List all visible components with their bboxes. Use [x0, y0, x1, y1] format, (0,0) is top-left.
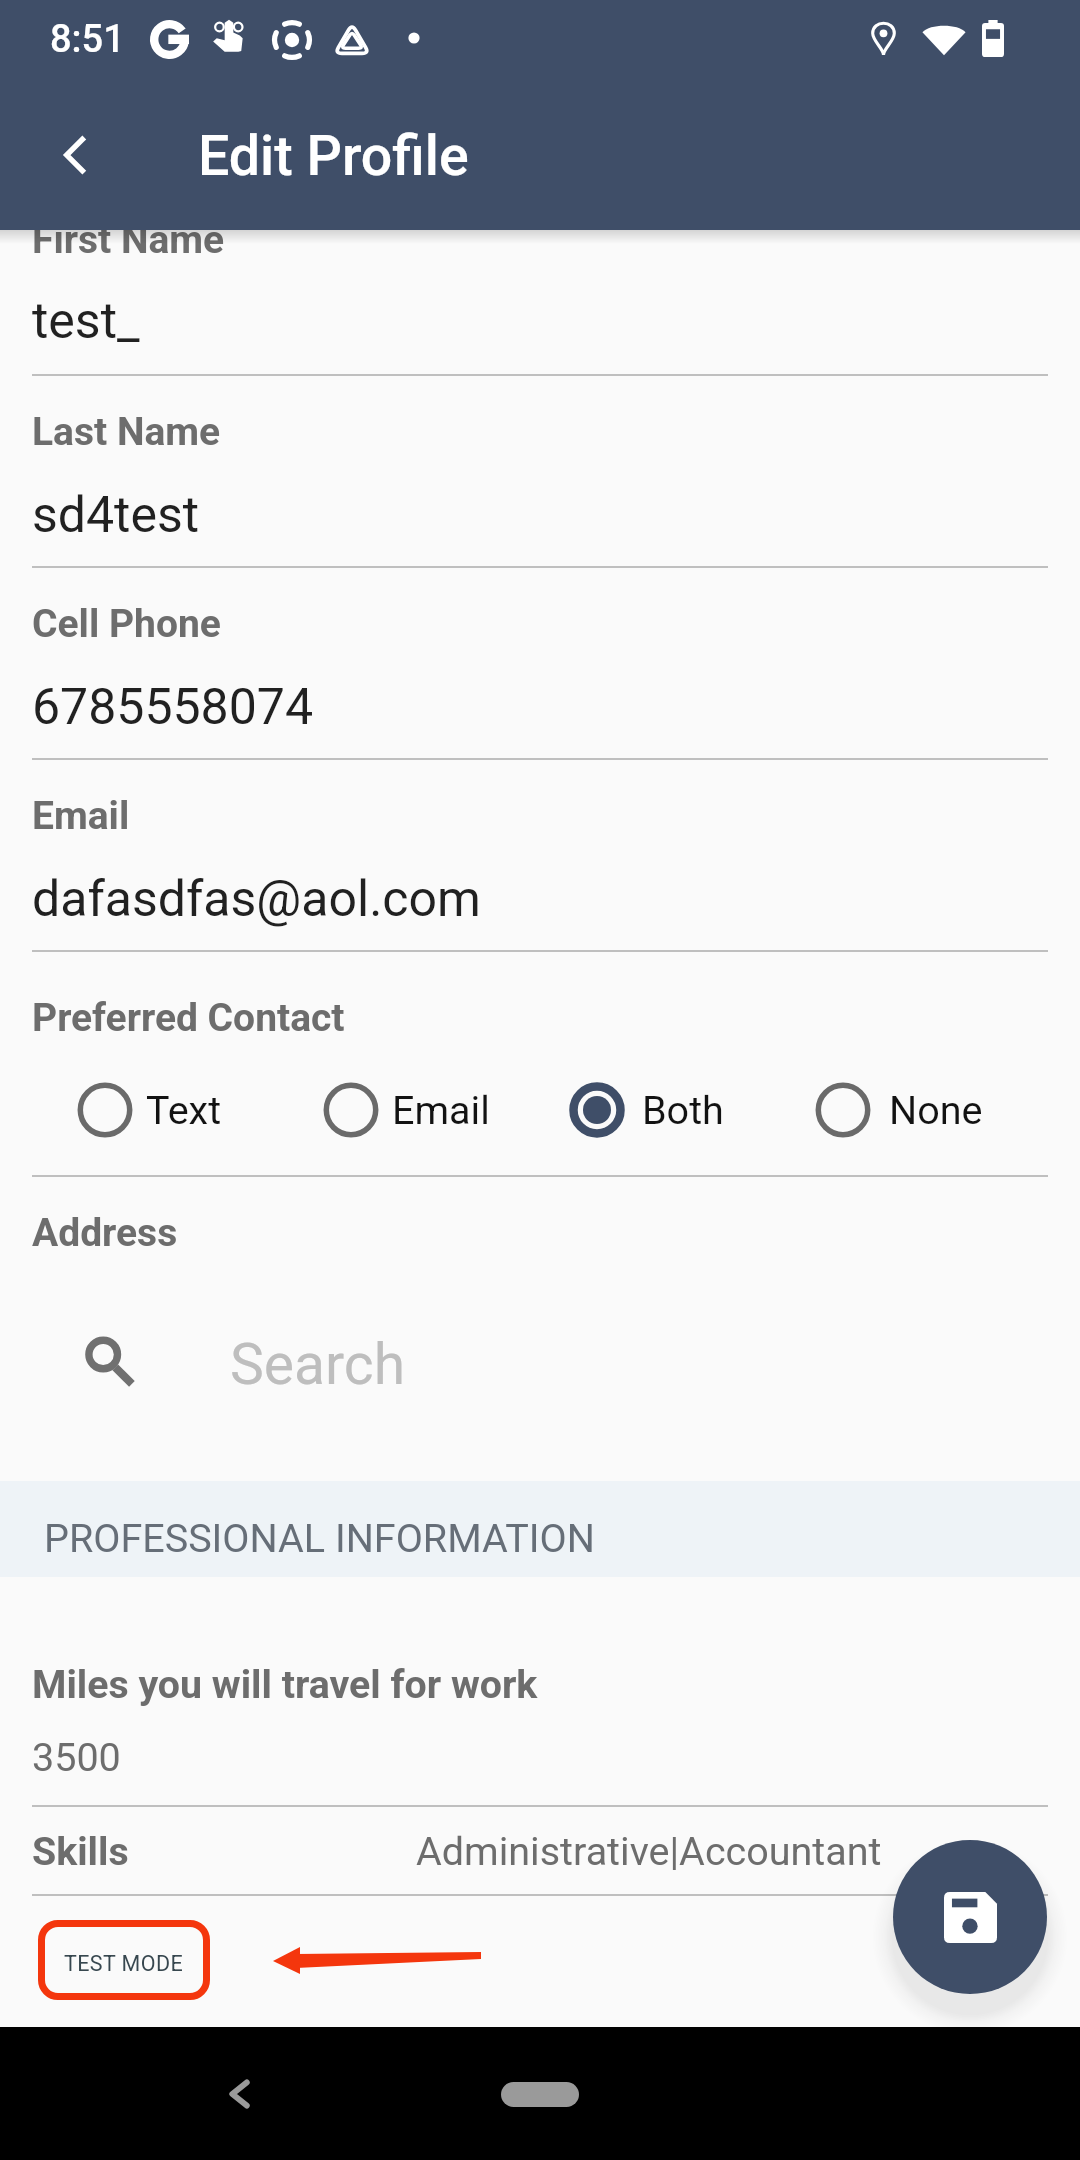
button[interactable]: Both — [559, 1068, 717, 1152]
button[interactable]: TEST MODE — [38, 1920, 210, 2000]
staticText: Email — [32, 793, 130, 839]
button[interactable]: Text — [67, 1068, 219, 1152]
staticText: dafasdfas@aol.com — [32, 870, 481, 929]
staticText: Skills — [32, 1829, 129, 1875]
staticText: sd4test — [32, 486, 200, 545]
button[interactable] — [0, 568, 1080, 758]
staticText: Cell Phone — [32, 601, 221, 647]
staticText: Email — [392, 1087, 490, 1133]
staticText: Preferred Contact — [32, 995, 345, 1041]
staticText: test_ — [32, 292, 140, 351]
staticText: Search — [230, 1331, 406, 1398]
staticText: 8:51 — [50, 17, 125, 62]
button[interactable] — [0, 1614, 1080, 1805]
button[interactable]: Save — [893, 1840, 1047, 1994]
button[interactable]: Back — [16, 104, 136, 204]
staticText: First Name — [32, 217, 225, 263]
staticText: Administrative|Accountant — [416, 1828, 882, 1874]
staticText: PROFESSIONAL INFORMATION — [44, 1515, 595, 1561]
staticText: Edit Profile — [198, 124, 469, 189]
button[interactable] — [0, 230, 1080, 374]
staticText: Last Name — [32, 409, 221, 455]
staticText: TEST MODE — [64, 1951, 184, 1976]
staticText: None — [889, 1087, 983, 1133]
button[interactable] — [0, 376, 1080, 566]
button[interactable]: Email — [313, 1068, 487, 1152]
staticText: Text — [146, 1087, 222, 1133]
staticText: Miles you will travel for work — [32, 1662, 538, 1708]
staticText: 6785558074 — [32, 678, 314, 737]
button[interactable]: Search address — [0, 1305, 1080, 1410]
staticText: 3500 — [32, 1734, 121, 1780]
button[interactable] — [0, 1807, 1080, 1894]
staticText: Address — [32, 1210, 178, 1256]
button[interactable]: None — [805, 1068, 975, 1152]
staticText: Both — [642, 1087, 724, 1133]
button[interactable] — [0, 760, 1080, 950]
